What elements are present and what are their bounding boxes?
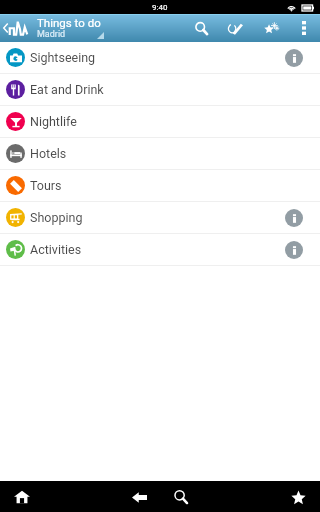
button[interactable]: Highlights bbox=[258, 14, 284, 42]
button[interactable]: Information bbox=[285, 241, 303, 259]
button[interactable]: Hotels bbox=[0, 138, 320, 169]
staticText: Things to do bbox=[37, 16, 101, 29]
staticText: Madrid bbox=[37, 29, 66, 40]
button[interactable]: Home bbox=[8, 483, 36, 511]
button[interactable]: Shopping bbox=[0, 202, 320, 233]
button[interactable]: Favorites bbox=[284, 483, 312, 511]
button[interactable]: Back bbox=[125, 483, 153, 511]
staticText: Eat and Drink bbox=[30, 82, 303, 97]
button[interactable]: More options bbox=[293, 14, 315, 42]
button[interactable]: Activities bbox=[0, 234, 320, 265]
staticText: Tours bbox=[30, 178, 303, 193]
staticText: 9:40 bbox=[152, 3, 168, 12]
staticText: Sightseeing bbox=[30, 50, 285, 65]
button[interactable]: Eat and Drink bbox=[0, 74, 320, 105]
button[interactable]: Search bbox=[188, 14, 214, 42]
button[interactable]: Sightseeing bbox=[0, 42, 320, 73]
button[interactable]: Tours bbox=[0, 170, 320, 201]
button[interactable]: Search bbox=[167, 483, 195, 511]
button[interactable]: Information bbox=[285, 49, 303, 67]
staticText: Activities bbox=[30, 242, 285, 257]
button[interactable]: Edit trip bbox=[222, 14, 248, 42]
staticText: Nightlife bbox=[30, 114, 303, 129]
button[interactable]: Things to do bbox=[37, 14, 188, 42]
button[interactable]: Nightlife bbox=[0, 106, 320, 137]
button[interactable]: Navigate up bbox=[0, 14, 31, 42]
staticText: Hotels bbox=[30, 146, 303, 161]
staticText: Shopping bbox=[30, 210, 285, 225]
button[interactable]: Information bbox=[285, 209, 303, 227]
